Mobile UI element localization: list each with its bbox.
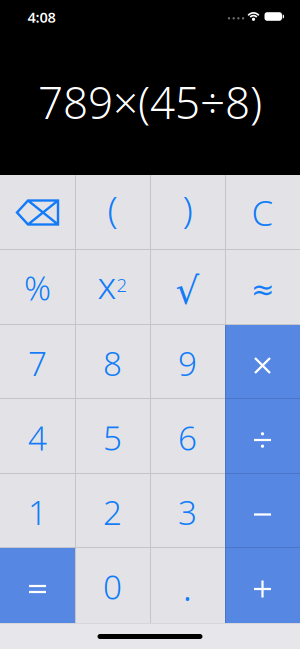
- button[interactable]: Close parenthesis: [150, 175, 225, 250]
- button[interactable]: Add: [225, 548, 300, 623]
- button[interactable]: Open parenthesis: [75, 175, 150, 250]
- button[interactable]: Delete: [0, 175, 75, 250]
- button[interactable]: Square root: [150, 250, 225, 325]
- staticText: ≈: [251, 274, 274, 305]
- staticText: 9: [178, 341, 197, 385]
- staticText: 7: [28, 341, 47, 385]
- staticText: (: [107, 184, 117, 233]
- staticText: 6: [178, 415, 197, 460]
- button[interactable]: 3: [150, 474, 225, 548]
- button[interactable]: 1: [0, 474, 75, 548]
- staticText: 8: [103, 341, 122, 385]
- staticText: ): [182, 184, 192, 233]
- button[interactable]: 8: [75, 325, 150, 399]
- button[interactable]: 7: [0, 325, 75, 399]
- button[interactable]: Approximate: [225, 250, 300, 325]
- button[interactable]: Decimal point: [150, 548, 225, 623]
- staticText: 4:08: [27, 7, 55, 27]
- staticText: 789×(45÷8): [38, 73, 262, 131]
- staticText: %: [24, 265, 51, 310]
- staticText: 1: [28, 490, 47, 534]
- button[interactable]: 4: [0, 399, 75, 474]
- staticText: √: [175, 269, 199, 312]
- staticText: .: [182, 559, 192, 612]
- staticText: 4: [28, 415, 47, 460]
- button[interactable]: Divide: [225, 399, 300, 474]
- button[interactable]: Equals: [0, 548, 75, 623]
- button[interactable]: 2: [75, 474, 150, 548]
- staticText: 2: [103, 490, 122, 534]
- staticText: C: [251, 189, 273, 235]
- button[interactable]: Multiply: [225, 325, 300, 399]
- button[interactable]: Subtract: [225, 474, 300, 548]
- button[interactable]: Percent: [0, 250, 75, 325]
- button[interactable]: 6: [150, 399, 225, 474]
- staticText: x2: [97, 260, 127, 309]
- staticText: 3: [178, 490, 197, 534]
- button[interactable]: 0: [75, 548, 150, 623]
- button[interactable]: Clear: [225, 175, 300, 250]
- button[interactable]: Square: [75, 250, 150, 325]
- button[interactable]: 5: [75, 399, 150, 474]
- staticText: 0: [103, 564, 122, 609]
- button[interactable]: 9: [150, 325, 225, 399]
- staticText: 5: [103, 415, 122, 460]
